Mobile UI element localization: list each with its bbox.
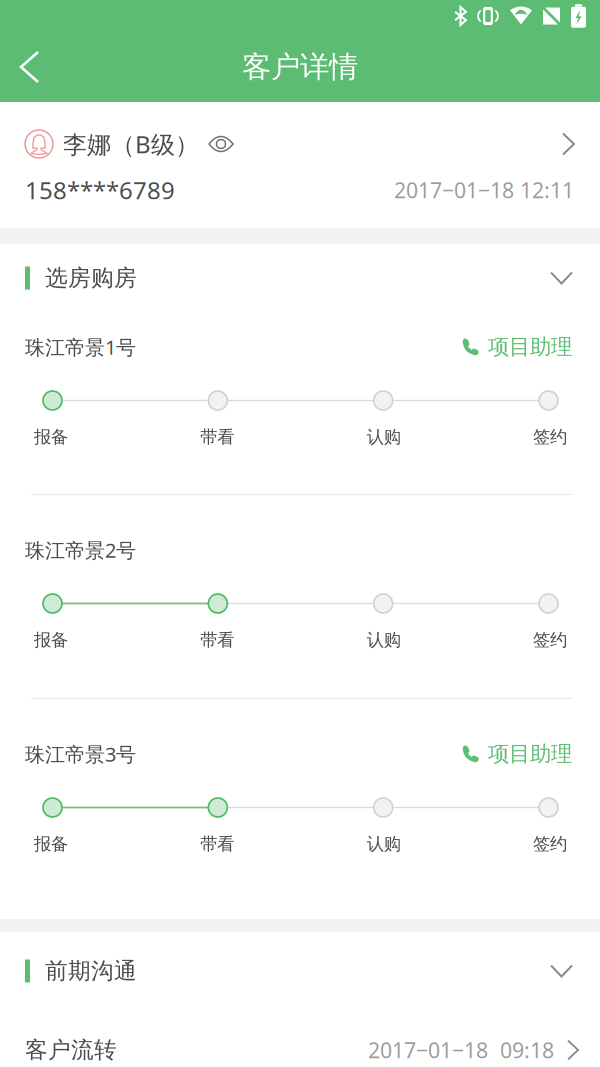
staticText: 签约	[533, 426, 567, 448]
staticText: 李娜（B级）	[63, 128, 199, 160]
button[interactable]: 客户流转	[0, 1010, 600, 1067]
staticText: 2017−01−18 09:18	[368, 1036, 554, 1064]
staticText: 认购	[367, 426, 401, 448]
staticText: 带看	[200, 426, 234, 448]
staticText: 带看	[200, 629, 234, 651]
staticText: 客户流转	[25, 1036, 117, 1064]
button[interactable]: 项目助理	[461, 334, 572, 360]
staticText: 带看	[200, 833, 234, 855]
staticText: 珠江帝景1号	[25, 334, 136, 360]
button[interactable]: 前期沟通	[0, 932, 600, 1010]
staticText: 认购	[367, 833, 401, 855]
staticText: 珠江帝景3号	[25, 741, 136, 767]
button[interactable]: 选房购房	[0, 244, 600, 312]
staticText: 签约	[533, 629, 567, 651]
staticText: 前期沟通	[45, 957, 137, 985]
staticText: 项目助理	[488, 741, 572, 767]
staticText: 2017−01−18 12:11	[394, 176, 574, 204]
staticText: 报备	[34, 629, 68, 651]
staticText: 选房购房	[45, 264, 137, 292]
staticText: 158****6789	[25, 174, 175, 206]
staticText: 珠江帝景2号	[25, 537, 136, 563]
staticText: 报备	[34, 426, 68, 448]
button[interactable]: 李娜（B级）	[0, 102, 600, 228]
button[interactable]: 项目助理	[461, 741, 572, 767]
staticText: 报备	[34, 833, 68, 855]
button[interactable]: Back	[0, 32, 58, 102]
staticText: 签约	[533, 833, 567, 855]
staticText: 认购	[367, 629, 401, 651]
staticText: 项目助理	[488, 334, 572, 360]
staticText: 客户详情	[242, 49, 358, 85]
